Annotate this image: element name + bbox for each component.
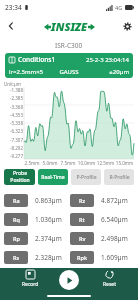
staticText: -5.338 <box>10 120 23 126</box>
staticText: -4.353 <box>10 112 23 118</box>
staticText: Record <box>22 281 39 288</box>
staticText: GAUSS <box>49 68 89 76</box>
button[interactable]: Probe Position <box>4 169 35 185</box>
staticText: 5.0mm <box>41 160 59 166</box>
staticText: 7.5mm <box>59 160 77 166</box>
staticText: Rz <box>79 197 86 204</box>
button[interactable]: Rv <box>70 230 134 247</box>
staticText: 4.872µm <box>101 196 128 205</box>
button[interactable]: Rz <box>70 192 134 209</box>
button[interactable]: Back <box>2 17 20 35</box>
button[interactable]: Rs <box>4 249 68 266</box>
staticText: -1.388 <box>10 87 23 93</box>
staticText: 0.863µm <box>35 196 62 205</box>
staticText: Rs <box>13 254 20 261</box>
staticText: Reset <box>103 281 116 288</box>
staticText: Rq <box>13 216 20 223</box>
staticText: 6.540µm <box>101 215 128 224</box>
button[interactable]: Rpk <box>70 249 134 266</box>
staticText: Rpk <box>77 254 87 261</box>
button[interactable]: Conditions1 <box>5 53 133 78</box>
staticText: Real-Time <box>41 174 65 181</box>
button[interactable]: Rt <box>70 211 134 228</box>
staticText: -9.277 <box>10 153 23 159</box>
button[interactable]: P-Profile <box>71 169 101 185</box>
staticText: 25-2-3 23:04:14 <box>86 56 129 64</box>
button[interactable]: Settings <box>119 18 135 34</box>
button[interactable]: Record <box>12 270 48 288</box>
staticText: 2.498µm <box>101 234 128 243</box>
staticText: 15.0mm <box>115 160 134 166</box>
staticText: 4G <box>115 4 123 11</box>
staticText: -7.307 <box>10 137 23 143</box>
staticText: Rv <box>79 235 86 242</box>
button[interactable]: Rp <box>4 230 68 247</box>
staticText: Conditions1 <box>18 55 56 64</box>
staticText: Rp <box>13 235 20 242</box>
staticText: Rt <box>79 216 85 223</box>
staticText: -2.385 <box>10 95 23 101</box>
staticText: Probe Position <box>10 170 30 184</box>
staticText: 1.036µm <box>35 215 62 224</box>
staticText: ISR-C300 <box>55 41 83 50</box>
staticText: ±20µm <box>89 68 129 76</box>
staticText: -8.292 <box>10 145 23 151</box>
button[interactable]: Start measurement <box>59 270 79 290</box>
button[interactable]: Real-Time <box>38 169 68 185</box>
staticText: Ra <box>13 197 20 204</box>
staticText: lr=2.5mm×5 <box>9 68 49 76</box>
staticText: INSIZE <box>51 19 88 34</box>
staticText: -6.323 <box>10 128 23 134</box>
staticText: 23:34 <box>5 3 22 12</box>
button[interactable]: Reset <box>91 270 127 288</box>
button[interactable]: R-Profile <box>104 169 134 185</box>
button[interactable]: Ra <box>4 192 68 209</box>
staticText: Unit:µm <box>4 81 22 87</box>
staticText: 12.5mm <box>96 160 115 166</box>
staticText: R-Profile <box>109 174 130 181</box>
staticText: 2.328µm <box>35 253 62 262</box>
staticText: P-Profile <box>76 174 97 181</box>
button[interactable]: Rq <box>4 211 68 228</box>
staticText: -3.368 <box>10 104 23 110</box>
staticText: 1.609µm <box>101 253 128 262</box>
staticText: 2.5mm <box>23 160 41 166</box>
staticText: 10.0mm <box>77 160 96 166</box>
staticText: 2.374µm <box>35 234 62 243</box>
